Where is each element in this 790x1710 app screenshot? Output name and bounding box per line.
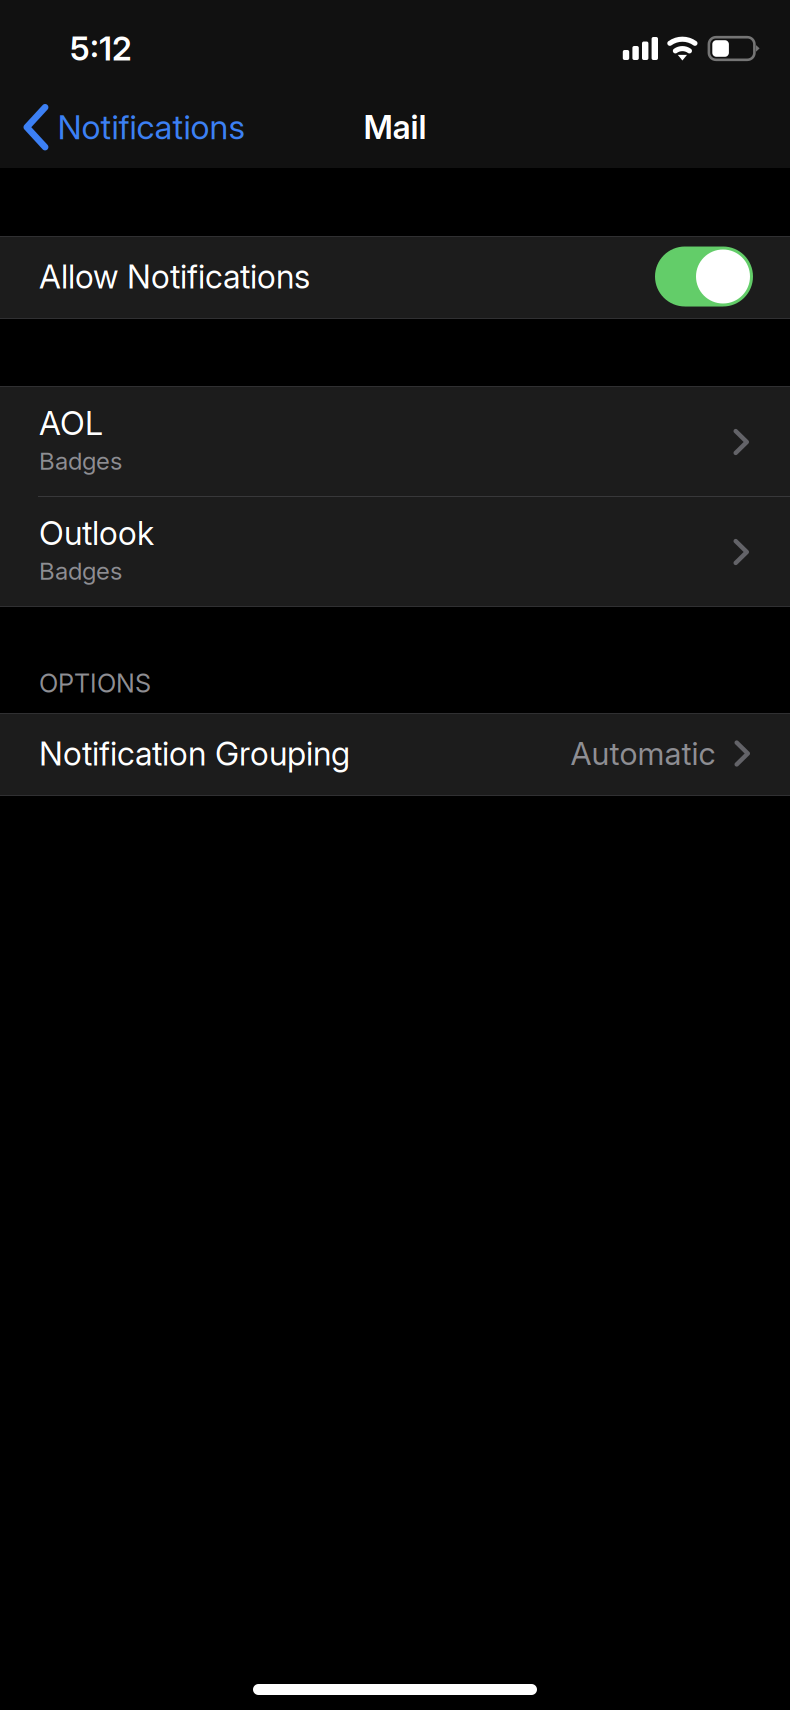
staticText: Mail — [363, 107, 426, 147]
staticText: 5:12 — [70, 29, 132, 68]
button[interactable]: Outlook — [0, 497, 790, 606]
staticText: Badges — [39, 556, 122, 585]
staticText: OPTIONS — [39, 668, 151, 699]
staticText: AOL — [39, 403, 103, 443]
staticText: Allow Notifications — [39, 257, 310, 296]
button[interactable]: Notification Grouping — [0, 713, 790, 796]
button[interactable]: Notifications — [0, 96, 261, 158]
button[interactable]: AOL — [0, 387, 790, 496]
staticText: Notification Grouping — [39, 734, 350, 773]
staticText: Badges — [39, 446, 122, 475]
staticText: Notifications — [57, 107, 245, 147]
button[interactable]: Allow Notifications — [0, 236, 790, 319]
staticText: Automatic — [570, 734, 715, 772]
staticText: Outlook — [39, 513, 154, 553]
